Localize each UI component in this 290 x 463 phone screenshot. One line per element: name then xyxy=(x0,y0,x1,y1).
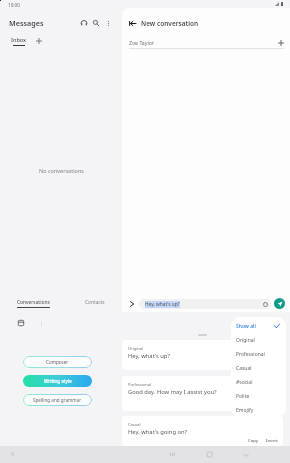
staticText: Conversations xyxy=(17,299,50,306)
staticText: Zoe Taylor xyxy=(129,39,155,46)
staticText: Original xyxy=(236,337,255,344)
button[interactable]: Expand xyxy=(126,298,137,309)
button[interactable]: Casual xyxy=(231,361,286,375)
button[interactable]: Conversations xyxy=(3,299,64,308)
staticText: Hey, what's up? xyxy=(145,301,180,308)
button[interactable]: Original xyxy=(231,333,286,347)
button[interactable]: Add recipient xyxy=(275,37,286,48)
button[interactable]: Casual xyxy=(122,416,283,446)
staticText: No conversations xyxy=(39,167,84,174)
staticText: #social xyxy=(236,379,253,386)
button[interactable]: Polite xyxy=(231,389,286,403)
button[interactable]: More xyxy=(35,317,47,329)
button[interactable]: Compose xyxy=(15,317,27,329)
button[interactable]: Search xyxy=(90,17,102,29)
button[interactable]: Show all xyxy=(231,319,286,333)
button[interactable]: Emojify xyxy=(231,403,286,417)
button[interactable]: Insert xyxy=(262,437,282,445)
staticText: Spelling and grammar xyxy=(33,397,82,403)
staticText: Casual xyxy=(128,422,141,427)
staticText: Professional xyxy=(236,351,265,358)
staticText: Original xyxy=(128,346,144,351)
button[interactable]: Hey, what's up? xyxy=(139,299,271,309)
staticText: Casual xyxy=(236,365,252,372)
staticText: Inbox xyxy=(11,36,27,43)
button[interactable]: Send xyxy=(274,298,285,309)
button[interactable]: Contacts xyxy=(64,299,125,308)
button[interactable]: #social xyxy=(231,375,286,389)
button[interactable]: Add xyxy=(33,35,45,47)
button[interactable]: Back xyxy=(127,18,138,29)
staticText: Good day. How may I assist you? xyxy=(128,388,217,396)
button[interactable]: Recents xyxy=(162,446,182,463)
staticText: 10:00 xyxy=(8,2,20,8)
button[interactable]: Support xyxy=(78,17,90,29)
staticText: Polite xyxy=(236,393,250,400)
button[interactable]: Writing style xyxy=(23,375,92,387)
staticText: Hey, what's going on? xyxy=(128,428,188,436)
staticText: Composer xyxy=(46,359,69,365)
staticText: Messages xyxy=(9,18,44,28)
staticText: Professional xyxy=(128,382,152,387)
button[interactable]: Professional xyxy=(122,376,283,411)
staticText: Copy xyxy=(248,438,258,444)
button[interactable]: Original xyxy=(122,340,283,370)
staticText: Hey, what's up? xyxy=(128,352,170,360)
button[interactable]: Inbox xyxy=(10,35,28,47)
button[interactable]: Hide keyboard xyxy=(236,446,256,463)
button[interactable]: Professional xyxy=(231,347,286,361)
staticText: Contacts xyxy=(85,299,105,306)
staticText: Emojify xyxy=(236,407,254,414)
button[interactable]: Spelling and grammar xyxy=(23,394,92,406)
button[interactable]: Copy xyxy=(244,437,262,445)
button[interactable]: More options xyxy=(102,17,114,29)
staticText: Writing style xyxy=(44,378,72,384)
button[interactable]: Composer xyxy=(23,356,92,368)
staticText: Insert xyxy=(266,438,278,444)
staticText: Show all xyxy=(236,323,256,330)
button[interactable]: Home xyxy=(199,446,219,463)
staticText: New conversation xyxy=(141,19,199,28)
